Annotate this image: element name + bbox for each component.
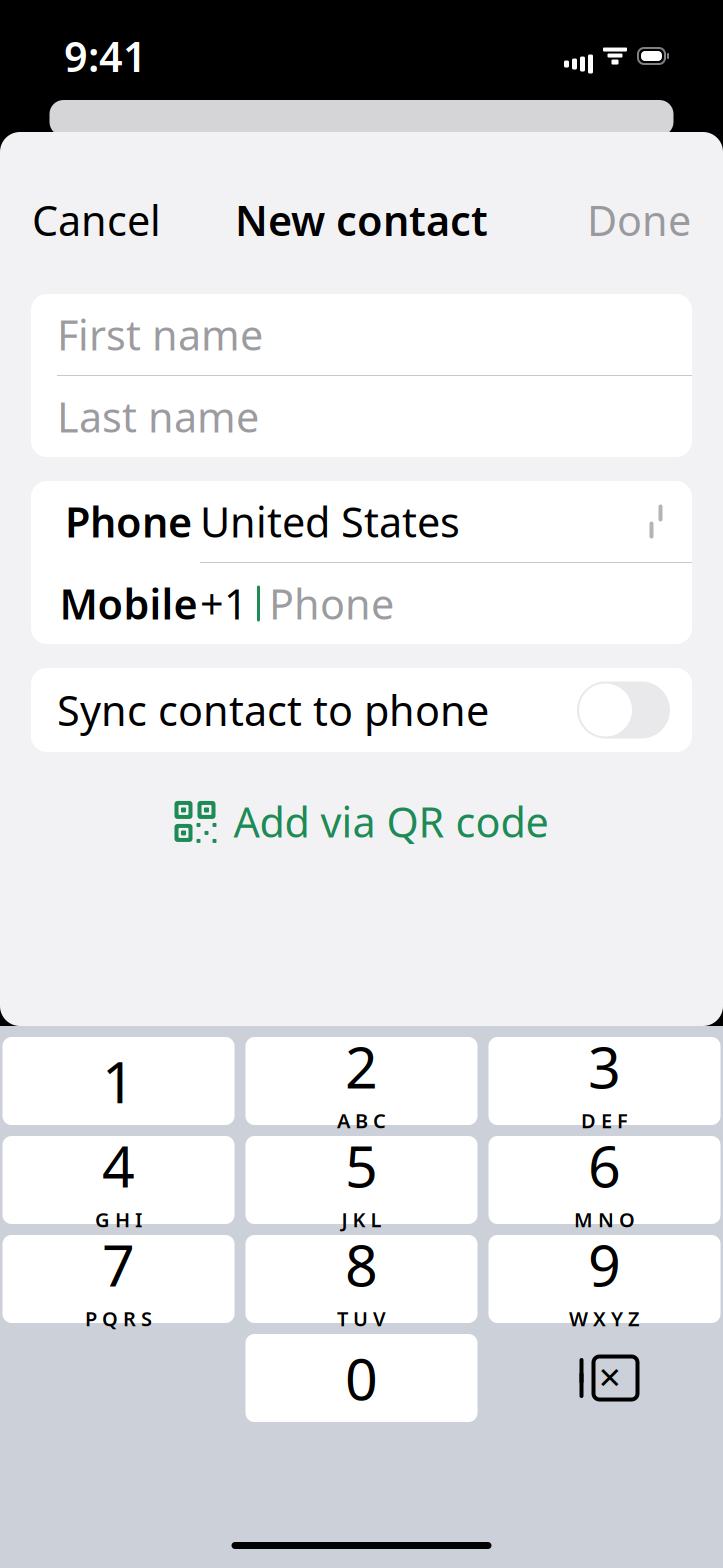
staticText: 5: [345, 1127, 378, 1203]
button[interactable]: 8: [245, 1235, 477, 1323]
staticText: United States: [200, 494, 460, 549]
staticText: 9:41: [64, 29, 147, 83]
button[interactable]: Add via QR code: [156, 782, 566, 861]
staticText: P Q R S: [85, 1305, 152, 1332]
staticText: Mobile: [59, 576, 197, 631]
button[interactable]: Delete: [488, 1334, 720, 1422]
button[interactable]: Last name: [31, 376, 692, 457]
staticText: 6: [588, 1127, 621, 1203]
staticText: 9: [588, 1226, 621, 1302]
button[interactable]: Sync contact to phone: [31, 668, 692, 752]
staticText: W X Y Z: [569, 1305, 640, 1332]
staticText: Last name: [57, 389, 259, 444]
button[interactable]: Cancel: [24, 183, 169, 257]
button[interactable]: 2: [245, 1037, 477, 1125]
button[interactable]: 9: [488, 1235, 720, 1323]
staticText: 2: [345, 1028, 378, 1104]
staticText: G H I: [95, 1206, 142, 1233]
staticText: +1: [200, 576, 248, 631]
button[interactable]: First name: [31, 294, 692, 375]
button[interactable]: 7: [2, 1235, 234, 1323]
button[interactable]: Phone: [31, 481, 692, 562]
staticText: Phone: [65, 494, 192, 549]
staticText: T U V: [337, 1305, 386, 1332]
staticText: Done: [587, 193, 691, 247]
button[interactable]: 1: [2, 1037, 234, 1125]
staticText: Cancel: [32, 193, 161, 247]
staticText: D E F: [581, 1107, 628, 1134]
button[interactable]: 3: [488, 1037, 720, 1125]
staticText: 3: [588, 1028, 621, 1104]
staticText: Sync contact to phone: [57, 683, 489, 737]
button[interactable]: Done: [579, 183, 699, 257]
staticText: J K L: [341, 1206, 381, 1233]
staticText: A B C: [337, 1107, 386, 1134]
button[interactable]: Mobile: [31, 563, 692, 644]
staticText: Phone: [269, 576, 394, 631]
staticText: ✕: [597, 1361, 622, 1395]
staticText: 7: [102, 1226, 135, 1302]
button[interactable]: 6: [488, 1136, 720, 1224]
staticText: First name: [57, 307, 263, 362]
staticText: 0: [345, 1340, 378, 1416]
button[interactable]: 0: [245, 1334, 477, 1422]
staticText: 8: [345, 1226, 378, 1302]
staticText: M N O: [574, 1206, 635, 1233]
staticText: 4: [102, 1127, 135, 1203]
staticText: New contact: [235, 193, 488, 247]
staticText: Add via QR code: [233, 794, 548, 849]
button[interactable]: 4: [2, 1136, 234, 1224]
staticText: 1: [102, 1043, 135, 1119]
button[interactable]: 5: [245, 1136, 477, 1224]
